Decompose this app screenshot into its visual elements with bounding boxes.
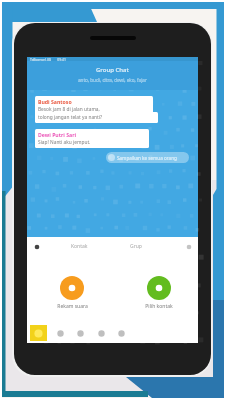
- button[interactable]: Sampaikan ke semua orang: [106, 152, 189, 163]
- button[interactable]: Photo: [94, 326, 108, 340]
- button[interactable]: Menu: [32, 242, 41, 251]
- button[interactable]: Keyboard: [30, 325, 47, 341]
- staticText: Kontak: [71, 243, 88, 250]
- button[interactable]: Budi Santoso: [35, 96, 153, 115]
- staticText: Siap! Nanti aku jemput.: [38, 139, 91, 146]
- staticText: Telkomsel 4G 09:41: [30, 57, 67, 61]
- button[interactable]: Sticker: [73, 326, 87, 340]
- staticText: Besok jam 8 di jalan utama,: [38, 106, 100, 113]
- staticText: Dewi Putri Sari: [38, 131, 77, 138]
- staticText: anto, budi, citra, dewi, eko, fajar: [78, 77, 147, 83]
- button[interactable]: tolong jangan telat ya nanti?: [35, 112, 158, 123]
- button[interactable]: Attach: [114, 326, 128, 340]
- button[interactable]: Emoji: [53, 326, 67, 340]
- staticText: Grup: [130, 243, 142, 250]
- staticText: Budi Santoso: [38, 98, 72, 105]
- button[interactable]: Dewi Putri Sari: [35, 129, 149, 148]
- staticText: tolong jangan telat ya nanti?: [38, 114, 103, 121]
- staticText: Group Chat: [96, 66, 129, 74]
- staticText: Sampaikan ke semua orang: [117, 155, 177, 161]
- staticText: Pilih kontak: [145, 303, 173, 310]
- button[interactable]: Pilih kontak: [139, 276, 179, 310]
- button[interactable]: More: [184, 242, 193, 251]
- button[interactable]: Rekam suara: [52, 276, 92, 310]
- staticText: Rekam suara: [57, 303, 88, 310]
